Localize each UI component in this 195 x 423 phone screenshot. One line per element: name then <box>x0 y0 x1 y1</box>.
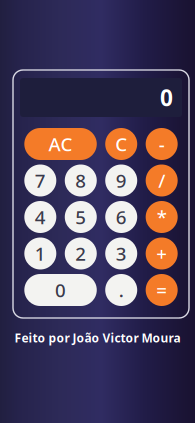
button[interactable]: = <box>146 274 178 306</box>
staticText: 3 <box>116 241 127 266</box>
button[interactable]: 9 <box>105 164 137 196</box>
staticText: C <box>115 132 127 156</box>
button[interactable]: 7 <box>24 164 56 196</box>
staticText: 0 <box>55 278 66 302</box>
staticText: 5 <box>75 205 86 229</box>
staticText: 1 <box>35 241 46 266</box>
button[interactable]: 5 <box>65 201 97 233</box>
button[interactable]: . <box>105 274 137 306</box>
button[interactable]: 6 <box>105 201 137 233</box>
button[interactable]: - <box>146 128 178 160</box>
staticText: - <box>159 132 165 156</box>
button[interactable]: 2 <box>65 237 97 269</box>
staticText: 9 <box>116 168 127 193</box>
button[interactable]: 1 <box>24 237 56 269</box>
staticText: . <box>119 278 124 302</box>
staticText: 4 <box>35 205 46 229</box>
staticText: 6 <box>116 205 127 229</box>
staticText: * <box>157 205 167 229</box>
staticText: = <box>156 278 167 302</box>
button[interactable]: 3 <box>105 237 137 269</box>
staticText: AC <box>49 132 73 156</box>
button[interactable]: C <box>105 128 137 160</box>
button[interactable]: 0 <box>24 274 97 306</box>
button[interactable]: 4 <box>24 201 56 233</box>
staticText: / <box>158 168 165 193</box>
button[interactable]: + <box>146 237 178 269</box>
button[interactable]: * <box>146 201 178 233</box>
staticText: + <box>156 241 167 266</box>
staticText: 8 <box>75 168 86 193</box>
staticText: Feito por João Victor Moura <box>14 330 180 346</box>
button[interactable]: AC <box>24 128 97 160</box>
button[interactable]: 8 <box>65 164 97 196</box>
staticText: 2 <box>75 241 86 266</box>
button[interactable]: / <box>146 164 178 196</box>
staticText: 0 <box>160 82 173 112</box>
staticText: 7 <box>35 168 46 193</box>
